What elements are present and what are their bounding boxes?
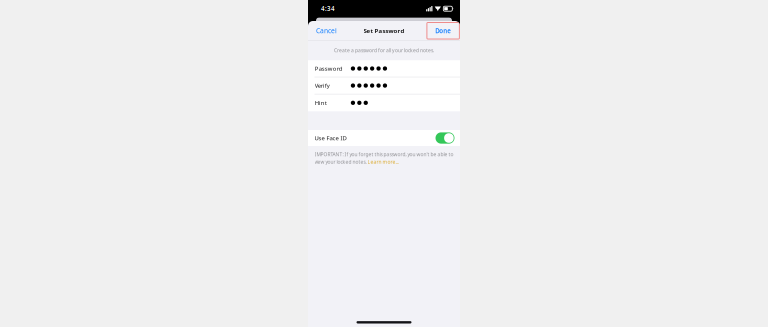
- staticText: Use Face ID: [314, 134, 346, 142]
- button[interactable]: Verify: [308, 77, 460, 94]
- staticText: Password: [315, 64, 343, 72]
- staticText: Hint: [315, 99, 327, 107]
- button[interactable]: Use Face ID: [308, 130, 460, 146]
- staticText: Create a password for all your locked no…: [334, 47, 434, 54]
- button[interactable]: Learn more...: [367, 159, 398, 165]
- staticText: view your locked notes.: [314, 159, 367, 165]
- staticText: Set Password: [363, 27, 404, 35]
- staticText: Verify: [315, 82, 330, 90]
- staticText: IMPORTANT: If you forget this password, …: [314, 151, 453, 158]
- staticText: 4:34: [321, 4, 335, 13]
- staticText: Cancel: [316, 26, 337, 35]
- button[interactable]: Password: [308, 60, 460, 77]
- button[interactable]: Hint: [308, 94, 460, 111]
- button[interactable]: Done: [427, 22, 459, 39]
- button[interactable]: Cancel: [313, 23, 340, 38]
- staticText: Learn more...: [367, 159, 398, 165]
- staticText: Done: [435, 27, 451, 35]
